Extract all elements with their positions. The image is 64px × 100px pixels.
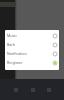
button[interactable]: Ringtone [5,58,59,67]
staticText: Bath [7,42,15,47]
button[interactable]: Music [5,31,59,40]
staticText: Ringtone [7,60,23,65]
button[interactable]: Bath [5,40,59,49]
button[interactable]: Home [29,86,36,93]
button[interactable]: Back [12,86,19,93]
staticText: Music [7,33,17,38]
button[interactable]: Notification [5,49,59,58]
button[interactable]: Recents [45,86,52,93]
staticText: Notification [7,51,27,56]
